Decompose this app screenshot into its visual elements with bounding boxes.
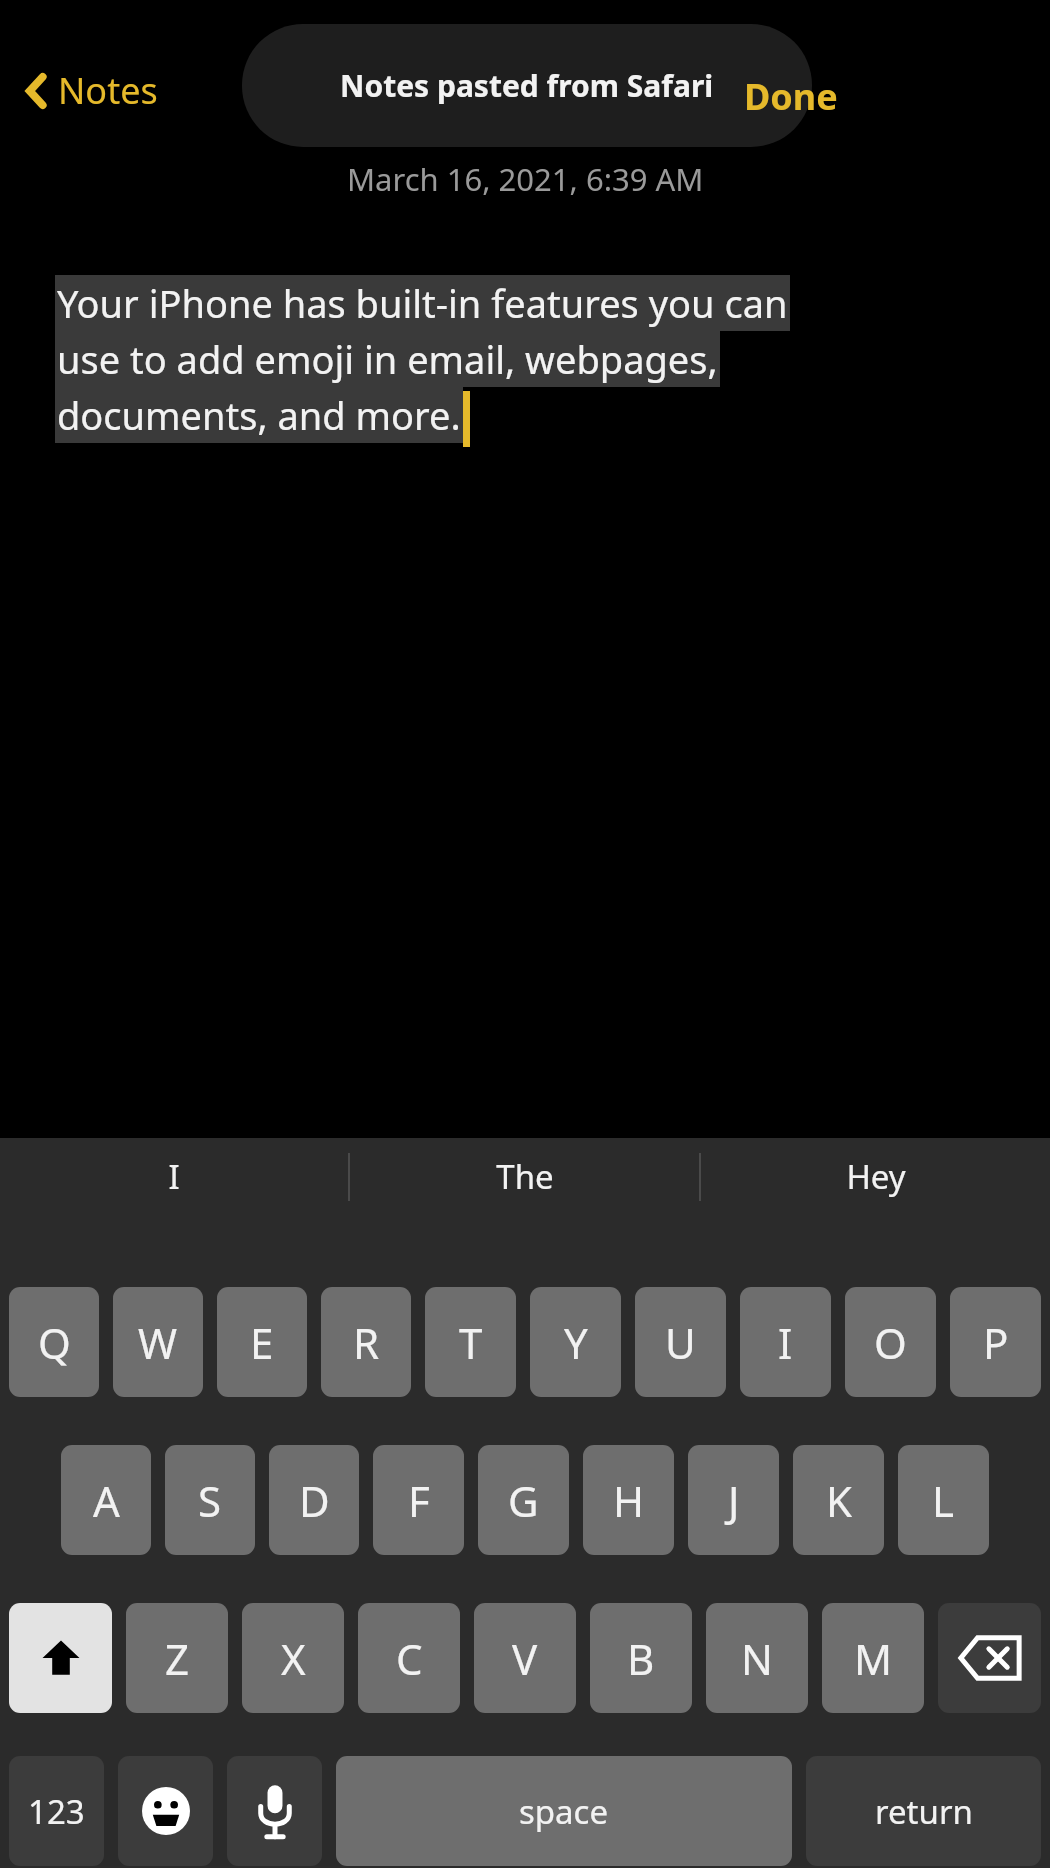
staticText: The [496,1154,554,1199]
staticText: space [519,1789,609,1834]
button[interactable]: D [269,1445,359,1555]
button[interactable]: P [950,1287,1041,1397]
staticText: B [627,1630,655,1687]
button[interactable]: K [793,1445,884,1555]
staticText: F [408,1472,430,1529]
button[interactable]: R [321,1287,411,1397]
staticText: return [875,1789,973,1834]
staticText: R [353,1314,380,1371]
button[interactable]: J [688,1445,779,1555]
button[interactable]: O [845,1287,936,1397]
button[interactable]: Emoji [118,1756,213,1866]
staticText: K [826,1472,852,1529]
button[interactable]: W [113,1287,203,1397]
staticText: C [396,1630,423,1687]
button[interactable]: Notes pasted from Safari [242,24,812,147]
button[interactable]: Hey [701,1138,1050,1215]
button[interactable]: H [583,1445,674,1555]
button[interactable]: E [217,1287,307,1397]
staticText: M [854,1630,893,1687]
button[interactable]: Notes [18,60,164,121]
button[interactable]: I [740,1287,831,1397]
staticText: Notes pasted from Safari [340,65,714,106]
button[interactable]: The [350,1138,699,1215]
staticText: N [741,1630,773,1687]
staticText: T [459,1314,483,1371]
staticText: A [93,1472,120,1529]
staticText: Q [38,1314,71,1371]
staticText: W [138,1314,178,1371]
staticText: I [778,1314,793,1371]
button[interactable]: A [61,1445,151,1555]
button[interactable]: U [635,1287,726,1397]
staticText: use to add emoji in email, webpages, [57,333,718,385]
staticText: J [728,1472,740,1529]
button[interactable]: Q [9,1287,99,1397]
button[interactable]: space [336,1756,792,1866]
staticText: E [250,1314,274,1371]
button[interactable]: F [373,1445,464,1555]
button[interactable]: C [358,1603,460,1713]
staticText: Hey [846,1154,906,1199]
button[interactable]: Y [530,1287,621,1397]
staticText: H [613,1472,645,1529]
staticText: L [932,1472,955,1529]
button[interactable]: Dictate [227,1756,322,1866]
button[interactable]: Done [736,66,846,127]
button[interactable]: Backspace [938,1603,1041,1713]
button[interactable]: M [822,1603,924,1713]
staticText: U [665,1314,696,1371]
staticText: 123 [28,1789,85,1834]
button[interactable]: S [165,1445,255,1555]
staticText: Your iPhone has built-in features you ca… [57,277,788,329]
staticText: Notes [58,66,158,115]
button[interactable]: G [478,1445,569,1555]
button[interactable]: T [425,1287,516,1397]
staticText: P [983,1314,1009,1371]
button[interactable]: V [474,1603,576,1713]
button[interactable]: I [0,1138,348,1215]
button[interactable]: B [590,1603,692,1713]
staticText: D [299,1472,330,1529]
staticText: G [508,1472,539,1529]
button[interactable]: return [806,1756,1041,1866]
button[interactable]: Z [126,1603,228,1713]
button[interactable]: X [242,1603,344,1713]
staticText: documents, and more. [57,389,461,441]
button[interactable]: L [898,1445,989,1555]
staticText: Y [564,1314,588,1371]
staticText: O [874,1314,907,1371]
button[interactable]: 123 [9,1756,104,1866]
staticText: Z [165,1630,190,1687]
staticText: X [281,1630,306,1687]
staticText: March 16, 2021, 6:39 AM [347,158,704,200]
staticText: Done [744,72,838,121]
staticText: I [168,1154,180,1199]
staticText: S [198,1472,222,1529]
button[interactable]: Shift [9,1603,112,1713]
staticText: V [512,1630,538,1687]
button[interactable]: N [706,1603,808,1713]
